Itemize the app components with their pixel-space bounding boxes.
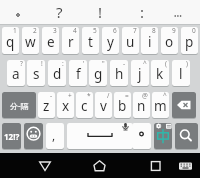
staticText: w xyxy=(25,33,36,51)
button[interactable]: l xyxy=(172,60,190,86)
button[interactable] xyxy=(0,0,200,24)
button[interactable] xyxy=(33,153,57,178)
button[interactable]: j xyxy=(131,60,149,86)
button[interactable] xyxy=(175,123,198,149)
staticText: 5 xyxy=(93,27,97,35)
button[interactable] xyxy=(173,153,197,178)
button[interactable]: z xyxy=(38,92,55,118)
staticText: 12!? xyxy=(4,131,20,142)
button[interactable]: r xyxy=(62,27,79,54)
staticText: q xyxy=(6,33,15,51)
button[interactable]: , xyxy=(46,123,64,149)
staticText: 3 xyxy=(53,27,57,35)
staticText: : xyxy=(62,60,64,68)
staticText: r xyxy=(68,33,74,51)
button[interactable] xyxy=(24,123,43,149)
staticText: f xyxy=(76,65,81,83)
staticText: x xyxy=(62,97,70,115)
staticText: c xyxy=(81,97,88,115)
staticText: ^ xyxy=(143,60,147,68)
button[interactable] xyxy=(67,123,133,149)
staticText: 8 xyxy=(152,27,156,35)
staticText: s xyxy=(33,65,40,83)
staticText: b xyxy=(118,97,127,115)
staticText: + xyxy=(68,92,72,100)
button[interactable]: v xyxy=(95,92,112,118)
staticText: t xyxy=(88,33,93,51)
staticText: 0 xyxy=(192,27,196,35)
button[interactable]: 分-隔 xyxy=(2,92,36,118)
staticText: u xyxy=(126,33,135,51)
button[interactable] xyxy=(143,153,167,178)
button[interactable] xyxy=(172,92,196,118)
staticText: 2 xyxy=(33,27,37,35)
staticText: g xyxy=(94,65,103,83)
button[interactable]: : xyxy=(132,0,153,24)
staticText: 1 xyxy=(13,27,17,35)
staticText: @ xyxy=(142,92,148,100)
staticText: ! xyxy=(98,2,103,22)
staticText: " xyxy=(102,60,105,68)
button[interactable] xyxy=(87,153,111,178)
button[interactable]: ? xyxy=(49,0,70,24)
staticText: n xyxy=(137,97,146,115)
button[interactable]: x xyxy=(57,92,74,118)
staticText: j xyxy=(138,65,142,83)
button[interactable]: w xyxy=(22,27,39,54)
button[interactable]: m xyxy=(152,92,169,118)
button[interactable]: 12!? xyxy=(2,123,21,149)
staticText: ? xyxy=(56,2,63,22)
staticText: 6 xyxy=(113,27,117,35)
staticText: i xyxy=(148,33,152,51)
button[interactable]: a xyxy=(7,60,25,86)
button[interactable]: i xyxy=(141,27,158,54)
button[interactable]: k xyxy=(151,60,169,86)
button[interactable]: u xyxy=(122,27,139,54)
staticText: d xyxy=(53,65,62,83)
staticText: ^ xyxy=(163,92,167,100)
staticText: ( xyxy=(165,60,167,68)
staticText: 4 xyxy=(73,27,77,35)
button[interactable]: y xyxy=(102,27,119,54)
button[interactable]: s xyxy=(27,60,45,86)
staticText: ! xyxy=(41,60,43,68)
staticText: e xyxy=(47,33,55,51)
staticText: m xyxy=(154,97,167,115)
staticText: - xyxy=(50,92,53,100)
button[interactable]: ! xyxy=(90,0,111,24)
staticText: ) xyxy=(186,60,188,68)
staticText: y xyxy=(107,33,114,51)
button[interactable]: d xyxy=(48,60,66,86)
button[interactable]: t xyxy=(82,27,99,54)
button[interactable]: h xyxy=(110,60,128,86)
button[interactable]: b xyxy=(114,92,131,118)
staticText: : xyxy=(140,2,145,22)
button[interactable] xyxy=(154,123,172,149)
staticText: k xyxy=(156,65,164,83)
button[interactable]: q xyxy=(2,27,19,54)
button[interactable]: g xyxy=(89,60,107,86)
staticText: 7 xyxy=(133,27,137,35)
button[interactable]: n xyxy=(133,92,150,118)
staticText: 9 xyxy=(172,27,176,35)
staticText: 分-隔 xyxy=(10,100,29,111)
staticText: h xyxy=(115,65,124,83)
staticText: ' xyxy=(83,60,85,68)
staticText: = xyxy=(125,92,129,100)
staticText: v xyxy=(100,97,107,115)
staticText: * xyxy=(87,92,91,100)
staticText: l xyxy=(179,65,183,83)
button[interactable]: p xyxy=(181,27,198,54)
staticText: - xyxy=(123,60,126,68)
button[interactable] xyxy=(132,123,151,149)
staticText: / xyxy=(107,92,110,100)
button[interactable]: c xyxy=(76,92,93,118)
button[interactable]: f xyxy=(69,60,87,86)
staticText: a xyxy=(12,65,20,83)
button[interactable]: e xyxy=(42,27,59,54)
staticText: p xyxy=(185,33,194,51)
staticText: o xyxy=(165,33,174,51)
staticText: , xyxy=(52,127,56,143)
button[interactable]: o xyxy=(161,27,178,54)
staticText: ? xyxy=(20,60,23,68)
